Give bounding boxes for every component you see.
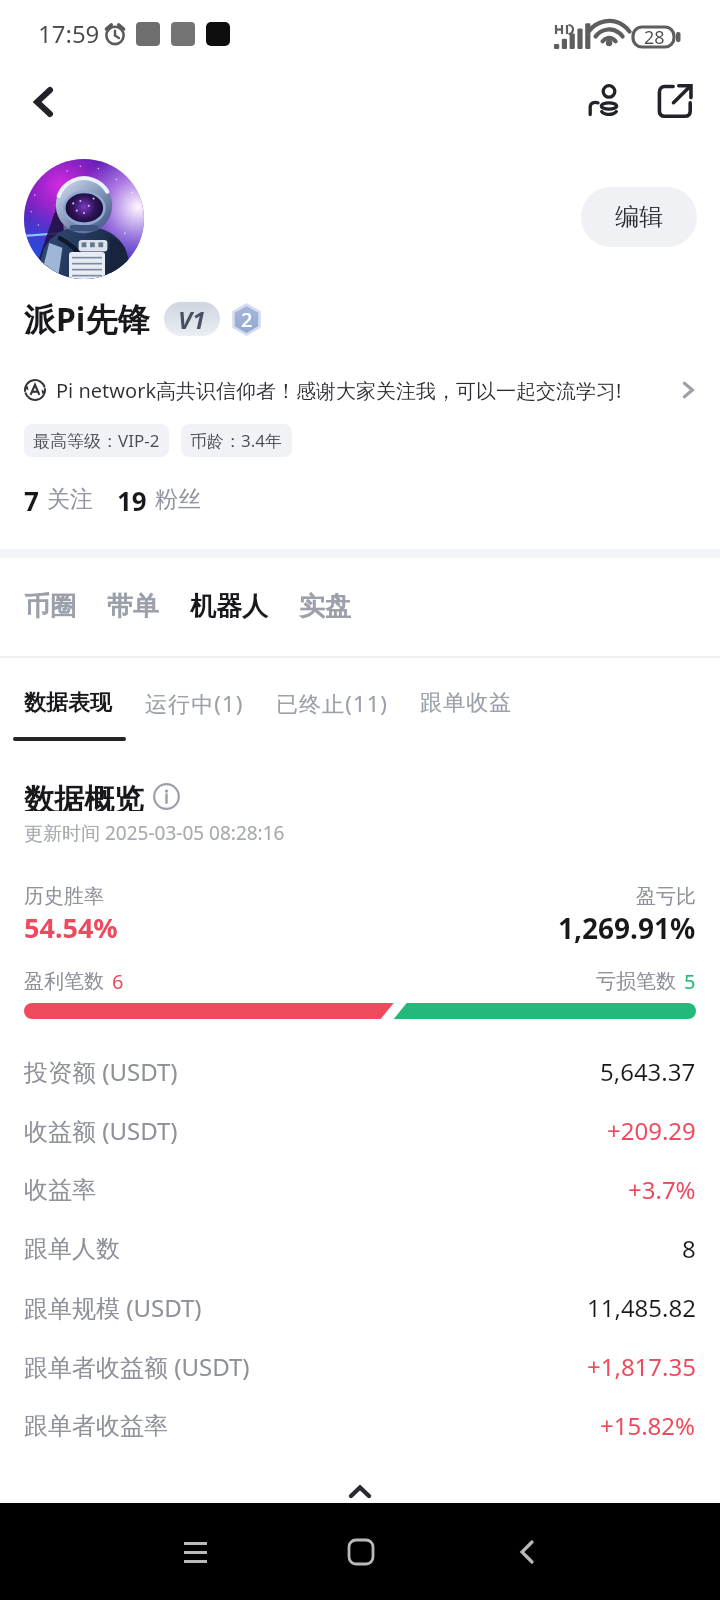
staticText: 跟单规模 (USDT) [24, 1291, 202, 1324]
staticText: 实盘 [299, 590, 351, 623]
button[interactable]: 实盘 [299, 588, 351, 624]
button[interactable]: Recents [153, 1513, 237, 1591]
button[interactable]: Customer service [576, 72, 634, 130]
button[interactable]: Avatar [24, 159, 144, 279]
staticText: 5 [684, 968, 696, 995]
staticText: 1,269.91% [558, 909, 696, 947]
staticText: 跟单者收益额 (USDT) [24, 1350, 250, 1383]
button[interactable]: 币圈 [24, 588, 76, 624]
staticText: Pi network高共识信仰者！感谢大家关注我，可以一起交流学习! [56, 377, 622, 404]
staticText: V1 [178, 303, 206, 336]
staticText: +1,817.35 [587, 1350, 696, 1383]
button[interactable]: Home [319, 1513, 403, 1591]
staticText: 币龄：3.4年 [190, 429, 283, 452]
button[interactable]: Collapse [0, 1460, 720, 1503]
staticText: 编辑 [615, 202, 663, 232]
button[interactable]: 带单 [107, 588, 159, 624]
staticText: 盈利笔数 [24, 969, 104, 994]
staticText: 运行中(1) [145, 688, 244, 718]
button[interactable]: Back [485, 1513, 569, 1591]
button[interactable]: 已终止(11) [276, 688, 389, 718]
button[interactable]: 7 [24, 483, 93, 515]
staticText: 粉丝 [155, 485, 201, 514]
staticText: 2 [241, 306, 253, 333]
staticText: 17:59 [38, 17, 100, 50]
staticText: 已终止(11) [276, 688, 389, 718]
button[interactable]: 19 [117, 483, 201, 515]
staticText: 28 [644, 25, 665, 50]
staticText: 带单 [107, 590, 159, 623]
staticText: 历史胜率 [24, 884, 104, 909]
staticText: 机器人 [190, 590, 268, 623]
button[interactable]: Info [153, 783, 180, 810]
staticText: 跟单者收益率 [24, 1411, 168, 1441]
staticText: 6 [112, 968, 124, 995]
staticText: 8 [682, 1232, 696, 1265]
staticText: 11,485.82 [587, 1291, 696, 1324]
staticText: 更新时间 2025-03-05 08:28:16 [24, 820, 285, 846]
staticText: 7 [24, 483, 39, 515]
staticText: 亏损笔数 [596, 969, 676, 994]
button[interactable]: 跟单收益 [420, 688, 513, 718]
staticText: 币圈 [24, 590, 76, 623]
staticText: 跟单人数 [24, 1234, 120, 1264]
staticText: +3.7% [628, 1173, 696, 1206]
button[interactable]: Back [14, 72, 74, 132]
button[interactable]: 编辑 [581, 187, 697, 247]
staticText: 收益额 (USDT) [24, 1114, 178, 1147]
staticText: 关注 [47, 485, 93, 514]
staticText: +15.82% [600, 1409, 696, 1442]
staticText: +209.29 [607, 1114, 696, 1147]
staticText: 收益率 [24, 1175, 96, 1205]
button[interactable]: 运行中(1) [145, 688, 244, 718]
staticText: 盈亏比 [636, 884, 696, 909]
button[interactable]: Share [646, 72, 704, 130]
staticText: 派Pi先锋 [24, 297, 150, 341]
button[interactable]: 数据表现 [24, 688, 112, 718]
staticText: 数据表现 [24, 689, 112, 717]
staticText: 最高等级：VIP-2 [33, 429, 160, 452]
staticText: 19 [117, 483, 147, 515]
staticText: 5,643.37 [600, 1055, 696, 1088]
button[interactable]: Pi network高共识信仰者！感谢大家关注我，可以一起交流学习! [24, 370, 698, 410]
staticText: 投资额 (USDT) [24, 1055, 178, 1088]
staticText: 54.54% [24, 909, 118, 946]
button[interactable]: 机器人 [190, 588, 268, 624]
staticText: 跟单收益 [420, 689, 513, 717]
staticText: 数据概览 [24, 781, 144, 811]
